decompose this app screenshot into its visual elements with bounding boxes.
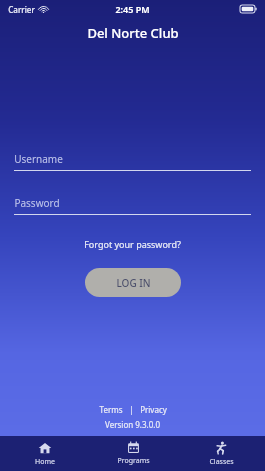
staticText: Classes [209, 457, 234, 467]
staticText: LOG IN [116, 276, 151, 290]
staticText: Terms [99, 404, 123, 415]
staticText: Version 9.3.0.0 [105, 419, 160, 430]
staticText: 2:45 PM [115, 3, 150, 15]
button[interactable]: Username [14, 152, 251, 171]
button[interactable]: Classes [177, 436, 265, 471]
button[interactable]: Forgot your password? [78, 236, 187, 252]
button[interactable]: Programs [89, 436, 177, 471]
button[interactable]: Home [0, 436, 89, 471]
staticText: Privacy [140, 404, 167, 415]
button[interactable]: Privacy [137, 403, 170, 416]
staticText: Username [14, 152, 63, 166]
button[interactable]: Terms [96, 403, 126, 416]
staticText: Password [14, 196, 60, 210]
staticText: | [129, 404, 134, 415]
staticText: Del Norte Club [87, 24, 179, 42]
staticText: Forgot your password? [84, 238, 181, 250]
button[interactable]: LOG IN [85, 268, 181, 297]
staticText: Home [35, 457, 55, 467]
button[interactable]: Password [14, 196, 251, 215]
staticText: Programs [117, 456, 150, 466]
staticText: Carrier [8, 4, 35, 15]
